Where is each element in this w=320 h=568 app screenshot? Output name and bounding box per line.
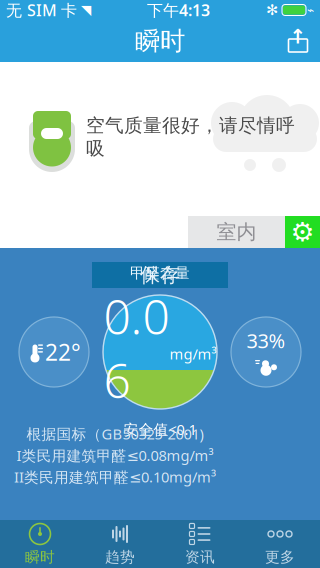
staticText: mg/m³ bbox=[169, 344, 216, 363]
staticText: 瞬时 bbox=[135, 25, 185, 56]
staticText: ✻ bbox=[266, 2, 278, 18]
staticText: 33% bbox=[246, 327, 285, 354]
staticText: I类民用建筑甲醛≤0.08mg/m³ bbox=[16, 445, 213, 465]
button[interactable]: 趋势 bbox=[80, 520, 160, 568]
staticText: II类民用建筑甲醛≤0.10mg/m³ bbox=[14, 467, 216, 487]
staticText: 安全值<0.1 bbox=[123, 419, 196, 439]
staticText: 下午4:13 bbox=[147, 0, 210, 21]
staticText: 更多 bbox=[265, 548, 295, 566]
staticText: 甲醛含量 bbox=[130, 264, 190, 282]
button[interactable]: 室内 bbox=[188, 216, 285, 248]
staticText: 趋势 bbox=[105, 548, 135, 566]
staticText: ↑ bbox=[289, 25, 306, 48]
staticText: 室内 bbox=[216, 220, 256, 244]
button[interactable]: 更多 bbox=[240, 520, 320, 568]
staticText: 根据国标（GB50325-2001) bbox=[26, 424, 203, 443]
staticText: ◥ bbox=[81, 2, 91, 17]
staticText: 22° bbox=[45, 337, 81, 367]
button[interactable]: 资讯 bbox=[160, 520, 240, 568]
staticText: 0.06 bbox=[103, 284, 169, 411]
staticText: 空气质量很好，请尽情呼吸 bbox=[86, 114, 295, 160]
staticText: ⚙ bbox=[290, 217, 314, 247]
button[interactable]: 设置 bbox=[285, 216, 320, 248]
staticText: ⌁ bbox=[307, 3, 314, 17]
button[interactable]: 瞬时 bbox=[0, 520, 80, 568]
button[interactable]: 分享 bbox=[276, 21, 320, 61]
staticText: 瞬时 bbox=[25, 548, 55, 566]
staticText: 保存 bbox=[140, 263, 180, 287]
staticText: 资讯 bbox=[185, 548, 215, 566]
staticText: 无 SIM 卡 bbox=[6, 0, 77, 21]
button[interactable]: 保存 bbox=[92, 262, 228, 288]
